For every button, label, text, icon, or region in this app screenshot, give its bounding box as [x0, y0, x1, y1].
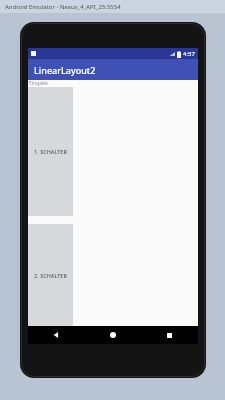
staticText: Eingabe: [29, 80, 48, 87]
button[interactable]: 1. SCHALTER: [28, 87, 73, 216]
staticText: 4:57: [183, 50, 195, 58]
button[interactable]: Home: [84, 326, 141, 344]
staticText: LinearLayout2: [34, 64, 96, 76]
button[interactable]: Eingabe: [28, 80, 198, 87]
button[interactable]: Back: [28, 326, 84, 344]
staticText: 1. SCHALTER: [34, 148, 67, 155]
button[interactable]: Recent apps: [141, 326, 198, 344]
staticText: Android Emulator - Nexus_4_API_25:5554: [5, 3, 121, 11]
staticText: 2. SCHALTER: [34, 272, 67, 279]
button[interactable]: 2. SCHALTER: [28, 224, 73, 326]
